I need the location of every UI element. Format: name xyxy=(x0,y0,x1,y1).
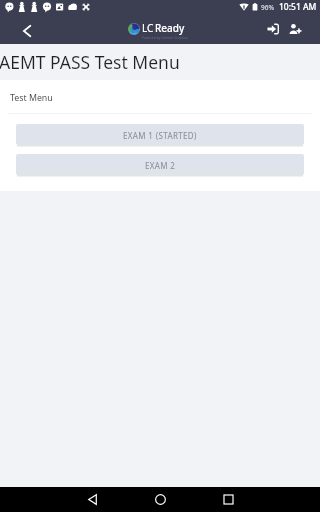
staticText: Test Menu xyxy=(10,92,53,104)
staticText: 10:51 AM xyxy=(279,1,317,13)
staticText: 96% xyxy=(261,3,274,12)
button[interactable]: Recents xyxy=(211,487,245,512)
staticText: EXAM 2 xyxy=(145,160,176,171)
staticText: AEMT PASS Test Menu xyxy=(0,50,180,74)
staticText: EXAM 1 (STARTED) xyxy=(123,130,197,141)
button[interactable]: Log in xyxy=(262,18,284,40)
staticText: LC xyxy=(142,21,154,35)
staticText: Ready xyxy=(155,21,185,35)
button[interactable]: Back xyxy=(75,487,109,512)
button[interactable]: EXAM 1 (STARTED) xyxy=(16,124,304,145)
button[interactable]: Register xyxy=(284,18,306,40)
button[interactable]: Home xyxy=(143,487,177,512)
button[interactable]: Back xyxy=(0,14,54,44)
staticText: Powered by Limmer Creative xyxy=(142,36,188,40)
button[interactable]: EXAM 2 xyxy=(16,154,304,175)
